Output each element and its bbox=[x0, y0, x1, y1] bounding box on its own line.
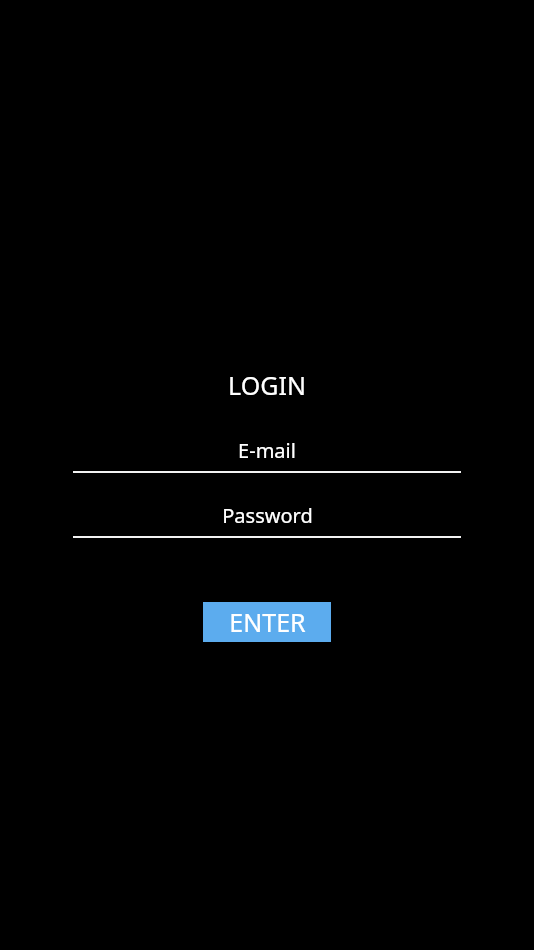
staticText: LOGIN bbox=[228, 368, 306, 402]
button[interactable]: Password bbox=[73, 502, 461, 538]
staticText: ENTER bbox=[229, 605, 306, 639]
button[interactable]: E-mail bbox=[73, 437, 461, 473]
button[interactable]: ENTER bbox=[203, 602, 331, 642]
staticText: Password bbox=[222, 502, 313, 529]
staticText: E-mail bbox=[238, 437, 296, 464]
